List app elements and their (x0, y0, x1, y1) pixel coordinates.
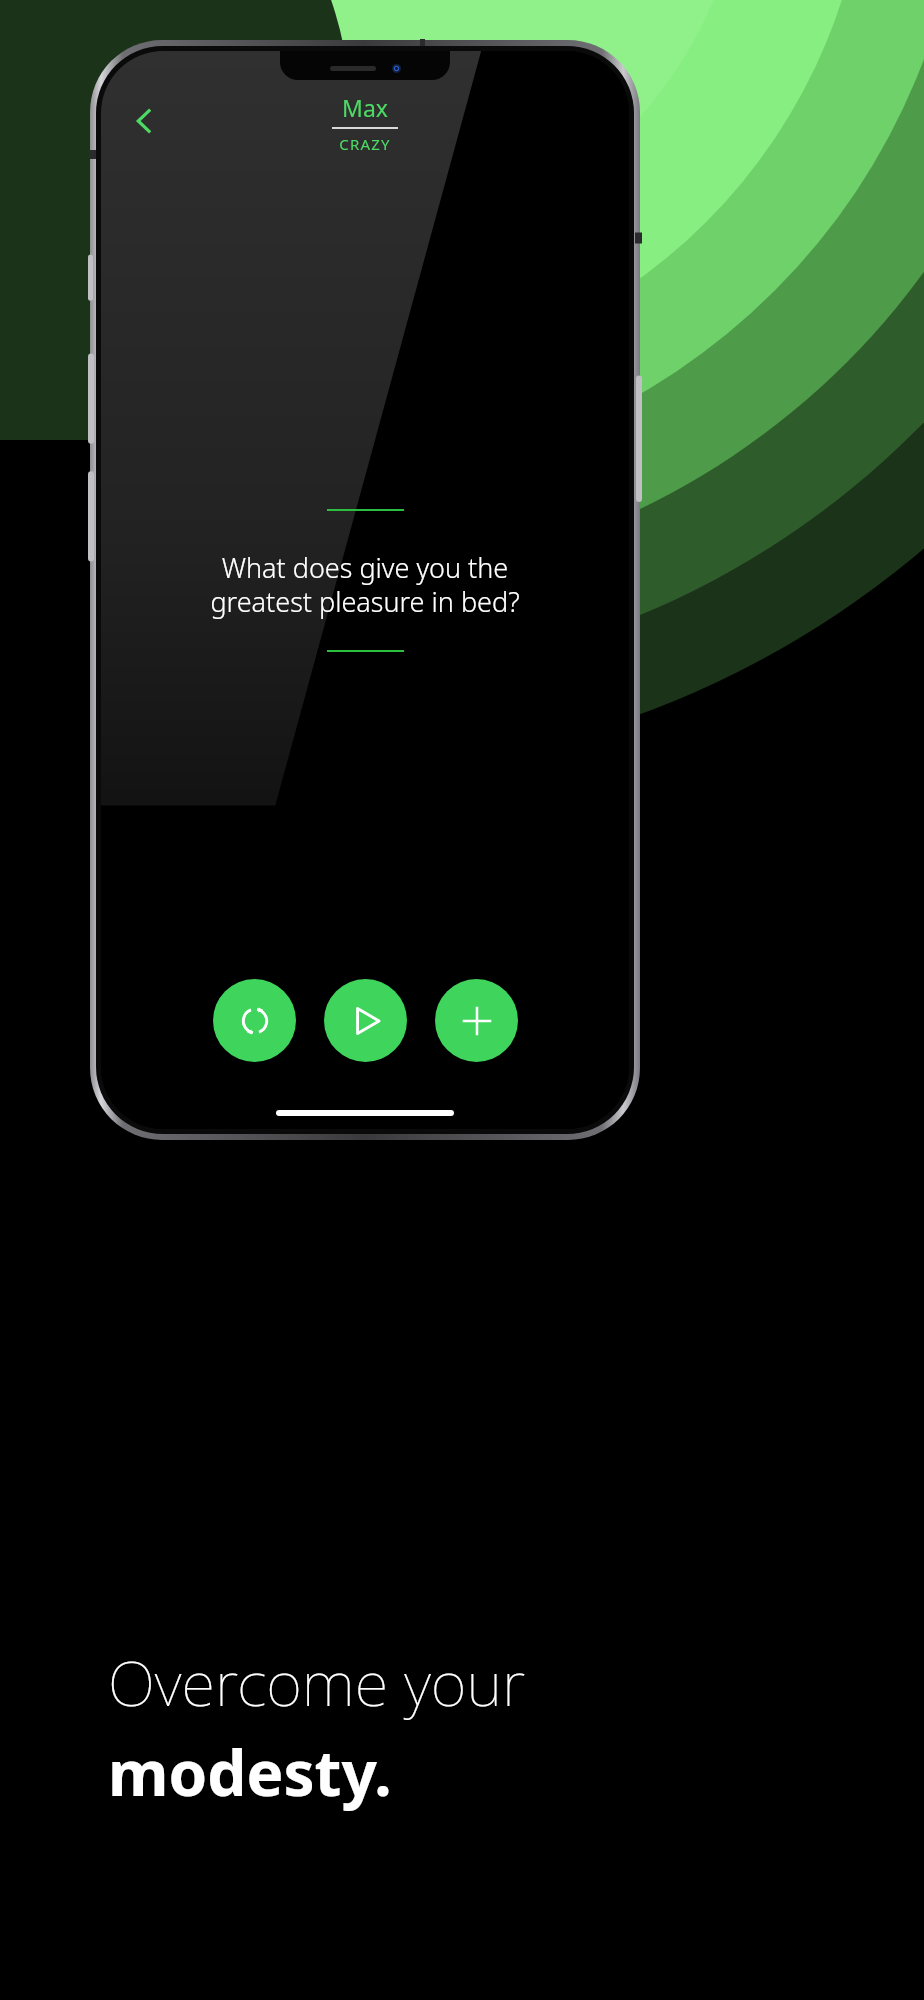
button[interactable]: Add (435, 979, 518, 1062)
staticText: modesty. (108, 1730, 392, 1814)
staticText: Overcome your (108, 1640, 526, 1724)
button[interactable]: Shuffle (213, 979, 296, 1062)
button[interactable]: Play (324, 979, 407, 1062)
button[interactable]: Back (119, 95, 171, 147)
button[interactable]: Max (332, 92, 398, 154)
staticText: CRAZY (339, 134, 391, 154)
staticText: Max (342, 92, 388, 123)
staticText: What does give you the greatest pleasure… (127, 549, 603, 620)
